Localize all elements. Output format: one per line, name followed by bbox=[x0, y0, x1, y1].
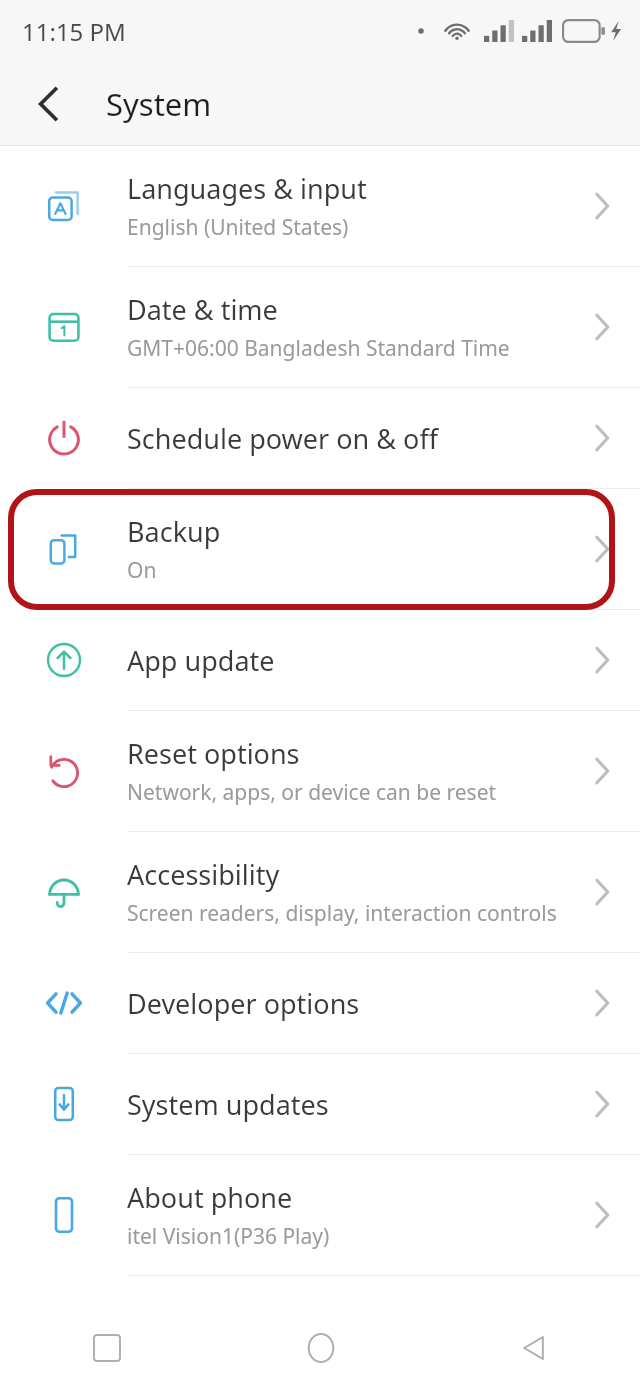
button[interactable]: Languages & input bbox=[0, 146, 640, 266]
staticText: Screen readers, display, interaction con… bbox=[127, 899, 557, 928]
button[interactable]: About phone bbox=[0, 1155, 640, 1275]
button[interactable]: Developer options bbox=[0, 953, 640, 1053]
button[interactable]: App update bbox=[0, 610, 640, 710]
staticText: App update bbox=[127, 642, 275, 679]
button[interactable]: Date & time bbox=[0, 267, 640, 387]
button[interactable]: Reset options bbox=[0, 711, 640, 831]
staticText: Date & time bbox=[127, 291, 278, 328]
button[interactable]: Back bbox=[427, 1308, 640, 1388]
staticText: GMT+06:00 Bangladesh Standard Time bbox=[127, 334, 510, 363]
staticText: Network, apps, or device can be reset bbox=[127, 778, 497, 807]
staticText: itel Vision1(P36 Play) bbox=[127, 1222, 330, 1251]
staticText: System updates bbox=[127, 1086, 329, 1123]
staticText: System bbox=[106, 83, 212, 125]
button[interactable]: Schedule power on & off bbox=[0, 388, 640, 488]
button[interactable]: Back bbox=[22, 77, 76, 131]
staticText: Languages & input bbox=[127, 170, 367, 207]
staticText: English (United States) bbox=[127, 213, 349, 242]
button[interactable]: Home bbox=[214, 1308, 427, 1388]
staticText: Reset options bbox=[127, 735, 300, 772]
button[interactable]: Backup bbox=[0, 489, 640, 609]
button[interactable]: Accessibility bbox=[0, 832, 640, 952]
button[interactable]: Recents bbox=[0, 1308, 214, 1388]
staticText: About phone bbox=[127, 1179, 293, 1216]
staticText: Schedule power on & off bbox=[127, 420, 438, 457]
button[interactable]: System updates bbox=[0, 1054, 640, 1154]
staticText: 11:15 PM bbox=[22, 15, 126, 48]
staticText: Developer options bbox=[127, 985, 360, 1022]
staticText: On bbox=[127, 556, 157, 585]
staticText: Accessibility bbox=[127, 856, 280, 893]
staticText: Backup bbox=[127, 513, 221, 550]
